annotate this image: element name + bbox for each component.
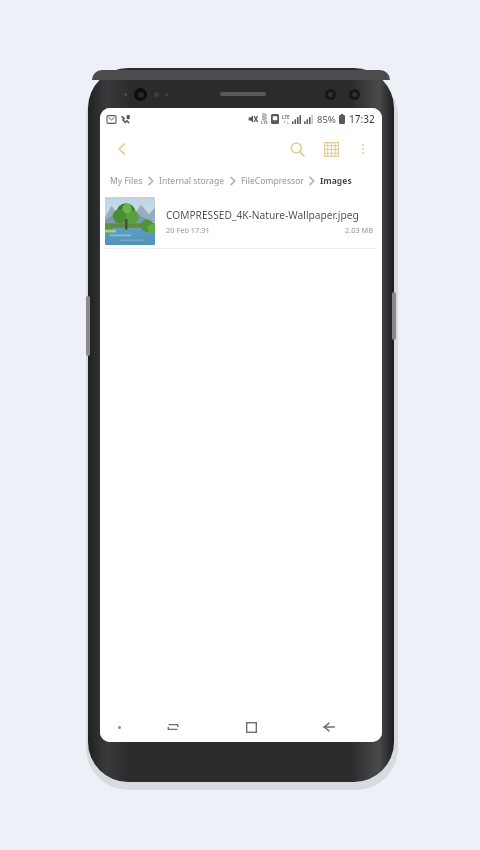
button[interactable]: COMPRESSED_4K-Nature-Wallpaper.jpeg	[100, 194, 382, 249]
button[interactable]: Recents	[134, 712, 212, 742]
button[interactable]: Search	[280, 132, 314, 166]
staticText: FileCompressor	[241, 175, 304, 187]
button[interactable]: More options	[348, 134, 378, 164]
button[interactable]: My Files	[109, 175, 144, 187]
staticText: COMPRESSED_4K-Nature-Wallpaper.jpeg	[166, 208, 359, 222]
staticText: LTE	[282, 114, 290, 120]
staticText: 20 Feb 17:31	[166, 225, 210, 235]
button[interactable]: FileCompressor	[240, 175, 305, 187]
button[interactable]: Images	[319, 175, 353, 187]
staticText: My Files	[110, 175, 143, 187]
button[interactable]: Grid view	[314, 132, 348, 166]
staticText: 2.03 MB	[345, 225, 374, 235]
staticText: ▒	[262, 113, 267, 120]
button[interactable]: Home	[212, 712, 290, 742]
staticText: 17:32	[349, 112, 375, 126]
staticText: ↑↓	[283, 120, 290, 125]
button[interactable]: Navigate up	[106, 133, 138, 165]
staticText: Internal storage	[159, 175, 225, 187]
staticText: LTE	[261, 120, 268, 125]
staticText: Images	[320, 175, 352, 187]
staticText: 85%	[317, 113, 336, 126]
button[interactable]: Internal storage	[158, 175, 226, 187]
button[interactable]: Back	[290, 712, 368, 742]
